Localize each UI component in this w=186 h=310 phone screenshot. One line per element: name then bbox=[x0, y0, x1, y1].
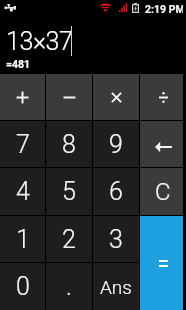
button[interactable]: 7 bbox=[0, 121, 45, 167]
button[interactable]: Plus bbox=[0, 74, 45, 120]
staticText: 4 bbox=[16, 177, 30, 206]
button[interactable]: Multiply bbox=[93, 74, 139, 120]
staticText: 1 bbox=[16, 225, 30, 254]
staticText: 6 bbox=[109, 177, 123, 206]
button[interactable]: 0 bbox=[0, 263, 45, 310]
staticText: C bbox=[155, 178, 171, 206]
staticText: 7 bbox=[16, 130, 30, 159]
staticText: 2 bbox=[62, 225, 76, 254]
staticText: 9 bbox=[109, 130, 123, 159]
staticText: 5 bbox=[62, 177, 76, 206]
button[interactable]: Divide bbox=[140, 74, 186, 120]
button[interactable]: 8 bbox=[46, 121, 92, 167]
staticText: Ans bbox=[100, 276, 132, 298]
button[interactable]: 1 bbox=[0, 216, 45, 262]
staticText: =481 bbox=[6, 58, 31, 70]
button[interactable]: Minus bbox=[46, 74, 92, 120]
button[interactable]: Clear bbox=[140, 168, 186, 215]
button[interactable]: 9 bbox=[93, 121, 139, 167]
button[interactable]: 3 bbox=[93, 216, 139, 262]
staticText: 2:19 PM bbox=[145, 3, 185, 15]
button[interactable]: 5 bbox=[46, 168, 92, 215]
staticText: . bbox=[66, 272, 72, 301]
staticText: 0 bbox=[16, 272, 30, 301]
button[interactable]: Backspace bbox=[140, 121, 186, 167]
button[interactable]: 4 bbox=[0, 168, 45, 215]
button[interactable]: 2 bbox=[46, 216, 92, 262]
button[interactable]: Ans bbox=[93, 263, 139, 310]
button[interactable]: . bbox=[46, 263, 92, 310]
staticText: 3 bbox=[109, 225, 123, 254]
button[interactable]: 6 bbox=[93, 168, 139, 215]
staticText: 13×37 bbox=[6, 27, 73, 56]
staticText: 8 bbox=[62, 130, 76, 159]
button[interactable]: Equals bbox=[140, 216, 186, 310]
